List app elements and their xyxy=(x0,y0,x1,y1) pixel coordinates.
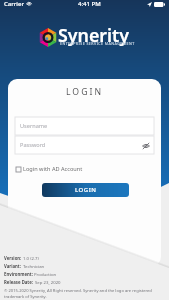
button[interactable]: Username xyxy=(15,117,154,135)
staticText: Synerity xyxy=(58,23,130,47)
button[interactable]: LOGIN xyxy=(42,183,129,197)
staticText: LOGIN xyxy=(8,86,161,98)
staticText: Technician xyxy=(23,263,45,269)
staticText: Carrier xyxy=(4,0,24,8)
button[interactable]: Show password xyxy=(141,141,150,150)
staticText: Sep 23, 2020 xyxy=(35,279,61,285)
staticText: Environment: xyxy=(4,271,34,277)
button[interactable]: Password xyxy=(15,136,154,154)
staticText: Release Date: xyxy=(4,279,35,285)
staticText: Login with AD Account xyxy=(23,165,83,173)
staticText: 1.0 (2.7) xyxy=(23,255,39,261)
staticText: ENTERPRISE SERVICE MANAGEMENT xyxy=(60,41,135,46)
staticText: Password xyxy=(20,141,46,149)
staticText: LOGIN xyxy=(75,186,97,194)
staticText: © 2015-2020 Synerity, All Right reserved… xyxy=(4,288,156,300)
staticText: Username xyxy=(20,122,48,130)
staticText: Variant: xyxy=(4,263,23,269)
button[interactable]: Login with AD Account xyxy=(16,164,83,174)
staticText: Production xyxy=(34,271,57,277)
staticText: Version: xyxy=(4,255,23,261)
staticText: 4:41 PM xyxy=(78,0,101,8)
